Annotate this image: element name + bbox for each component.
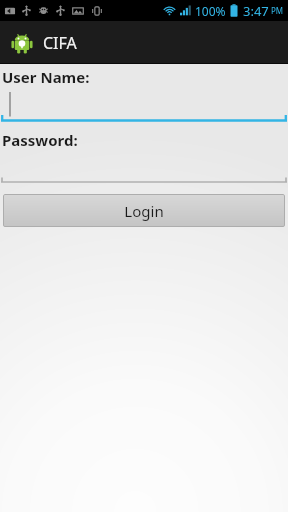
staticText: CIFA <box>43 32 77 54</box>
staticText: Password: <box>2 130 78 150</box>
staticText: PM <box>271 5 284 16</box>
staticText: 100% <box>195 3 226 19</box>
staticText: 3:47 <box>243 2 269 20</box>
button[interactable]: User name input <box>0 87 288 123</box>
button[interactable]: Password input <box>0 150 288 184</box>
staticText: User Name: <box>2 67 90 87</box>
staticText: Login <box>124 201 164 221</box>
button[interactable]: App icon <box>9 30 35 56</box>
button[interactable]: Login <box>3 194 285 227</box>
